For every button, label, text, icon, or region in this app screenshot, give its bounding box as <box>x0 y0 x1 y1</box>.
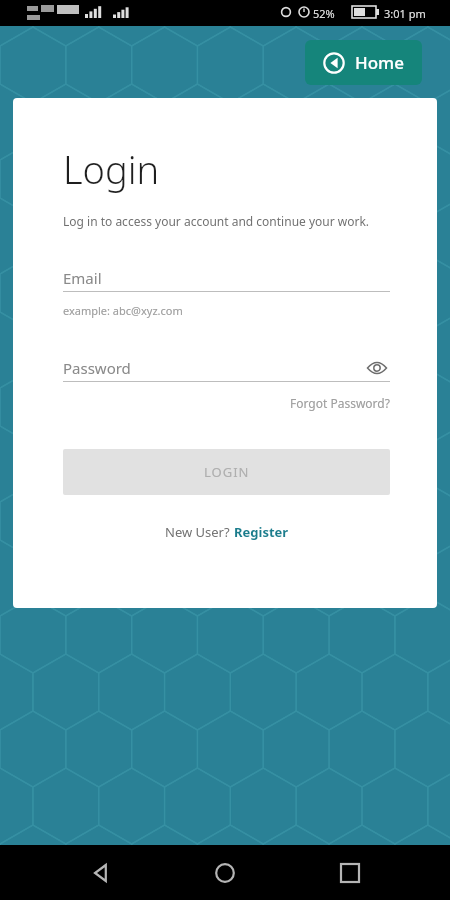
staticText: 52% <box>313 6 335 21</box>
staticText: example: abc@xyz.com <box>63 303 183 318</box>
button[interactable]: LOGIN <box>63 449 390 495</box>
button[interactable]: Show password <box>364 355 390 381</box>
button[interactable]: Email <box>63 265 390 291</box>
staticText: 3:01 pm <box>384 6 426 21</box>
staticText: Home <box>355 51 404 74</box>
button[interactable]: Password <box>63 355 390 381</box>
button[interactable]: Recents <box>326 849 374 897</box>
button[interactable]: Forgot Password? <box>290 395 390 411</box>
button[interactable]: Back <box>77 849 125 897</box>
staticText: Password <box>63 358 131 378</box>
staticText: Log in to access your account and contin… <box>63 213 370 229</box>
staticText: LOGIN <box>204 463 250 481</box>
button[interactable]: Home <box>305 40 422 85</box>
staticText: New User? <box>165 523 234 541</box>
staticText: Email <box>63 268 102 288</box>
button[interactable]: Register <box>234 523 289 541</box>
button[interactable]: Home <box>201 849 249 897</box>
staticText: Login <box>63 143 160 195</box>
